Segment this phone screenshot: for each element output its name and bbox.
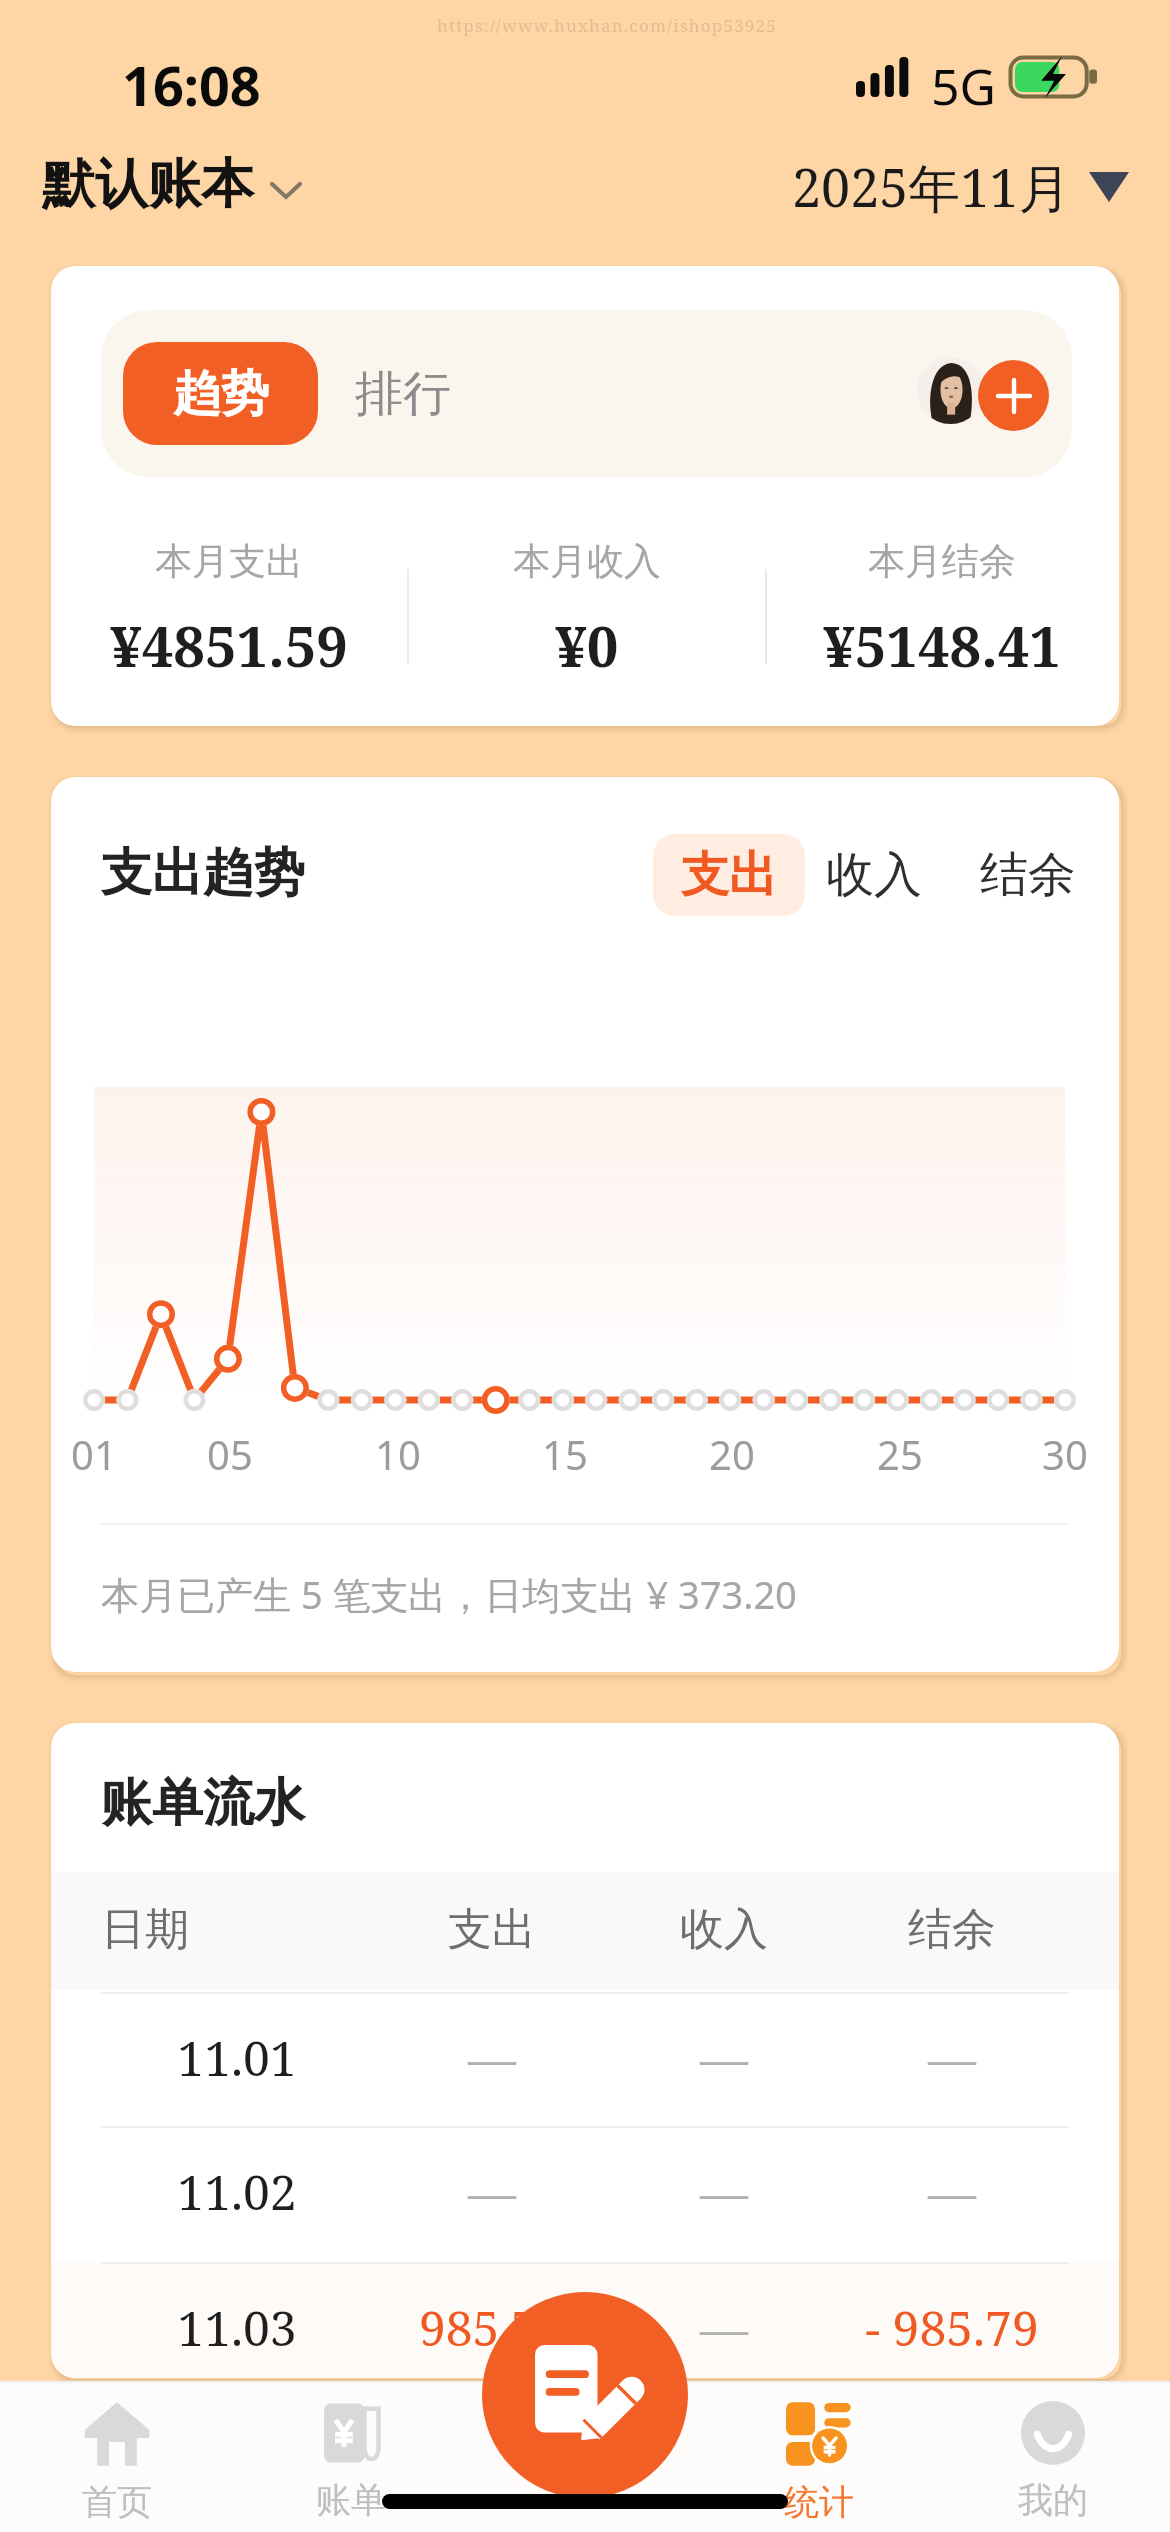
staticText: 日期	[101, 1902, 281, 1957]
staticText: 本月已产生 5 笔支出，日均支出 ¥ 373.20	[101, 1568, 797, 1620]
staticText: 结余	[862, 1902, 1042, 1957]
staticText: 2025年11月	[792, 151, 1071, 222]
staticText: 我的	[1018, 2478, 1088, 2522]
staticText: 首页	[82, 2480, 152, 2524]
staticText: 11.03	[147, 2295, 327, 2360]
button[interactable]	[51, 2126, 1119, 2260]
staticText: 账单流水	[101, 1771, 305, 1835]
staticText: 账单	[316, 2478, 386, 2522]
staticText: 本月结余	[868, 538, 1016, 585]
staticText: —	[634, 2295, 814, 2360]
button[interactable]	[51, 2262, 1119, 2378]
staticText: 结余	[980, 845, 1076, 905]
staticText: ¥5148.41	[823, 607, 1061, 683]
staticText: https://www.huxhan.com/ishop53925	[437, 14, 777, 37]
staticText: 支出	[402, 1902, 582, 1957]
staticText: 11.01	[147, 2025, 327, 2090]
staticText: 本月收入	[513, 538, 661, 585]
staticText: 25	[877, 1427, 923, 1481]
staticText: 统计	[784, 2480, 854, 2524]
staticText: 30	[1042, 1427, 1088, 1481]
button[interactable]: 默认账本	[36, 145, 306, 224]
staticText: 排行	[355, 364, 451, 424]
button[interactable]: 支出	[653, 834, 805, 916]
staticText: 默认账本	[42, 151, 254, 218]
button[interactable]: 首页	[0, 2381, 234, 2532]
staticText: —	[402, 2159, 582, 2224]
staticText: 10	[375, 1427, 421, 1481]
staticText: 985.79	[402, 2295, 582, 2360]
button[interactable]: 我的	[936, 2381, 1170, 2532]
button[interactable]: 2025年11月	[786, 145, 1135, 228]
staticText: 05	[207, 1427, 253, 1481]
button[interactable]: Add record	[482, 2292, 688, 2498]
button[interactable]: 统计	[702, 2381, 936, 2532]
staticText: 20	[709, 1427, 755, 1481]
button[interactable]: 结余	[965, 834, 1090, 916]
staticText: 支出	[681, 845, 777, 905]
staticText: 本月支出	[155, 538, 303, 585]
button[interactable]: Profile avatar	[886, 326, 1014, 454]
button[interactable]	[51, 1992, 1119, 2126]
staticText: ¥4851.59	[110, 607, 348, 683]
staticText: —	[852, 2159, 1052, 2224]
staticText: 5G	[931, 52, 996, 120]
button[interactable]: Add account book	[978, 360, 1049, 431]
staticText: 16:08	[122, 48, 261, 122]
button[interactable]: 排行	[323, 342, 483, 445]
staticText: - 985.79	[852, 2295, 1052, 2360]
button[interactable]: 收入	[811, 834, 936, 916]
staticText: —	[852, 2025, 1052, 2090]
staticText: 趋势	[173, 364, 269, 424]
staticText: 15	[542, 1427, 588, 1481]
staticText: 支出趋势	[101, 841, 305, 905]
staticText: 收入	[826, 845, 922, 905]
staticText: ¥0	[555, 607, 619, 683]
button[interactable]: 趋势	[123, 342, 318, 445]
staticText: —	[634, 2159, 814, 2224]
staticText: 01	[71, 1427, 117, 1481]
staticText: —	[634, 2025, 814, 2090]
staticText: 11.02	[147, 2159, 327, 2224]
staticText: 收入	[634, 1902, 814, 1957]
staticText: —	[402, 2025, 582, 2090]
button[interactable]: 账单	[234, 2381, 468, 2532]
